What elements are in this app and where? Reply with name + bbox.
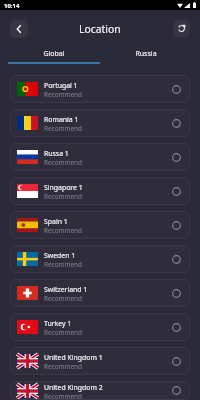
staticText: 10:14 bbox=[4, 2, 20, 10]
staticText: Portugal 1 bbox=[44, 81, 78, 90]
staticText: Recommend bbox=[44, 260, 82, 269]
staticText: Turkey 1 bbox=[44, 319, 72, 328]
staticText: Recommend bbox=[44, 192, 82, 201]
button[interactable]: Spain 1 bbox=[10, 211, 190, 239]
staticText: Recommend bbox=[44, 124, 82, 133]
staticText: United Kingdom 1 bbox=[44, 353, 103, 362]
staticText: Sweden 1 bbox=[44, 251, 76, 260]
staticText: Recommend bbox=[44, 328, 82, 337]
button[interactable]: Portugal 1 bbox=[10, 75, 190, 103]
button[interactable]: Back bbox=[10, 20, 28, 38]
staticText: Singapore 1 bbox=[44, 183, 83, 192]
staticText: Recommend bbox=[44, 226, 82, 235]
button[interactable]: Russia bbox=[100, 47, 192, 64]
staticText: Location bbox=[79, 22, 121, 36]
staticText: Recommend bbox=[44, 158, 82, 167]
staticText: Spain 1 bbox=[44, 217, 68, 226]
button[interactable]: Singapore 1 bbox=[10, 177, 190, 205]
button[interactable]: Switzerland 1 bbox=[10, 279, 190, 307]
button[interactable]: Sweden 1 bbox=[10, 245, 190, 273]
staticText: Global bbox=[43, 49, 65, 59]
button[interactable]: Russa 1 bbox=[10, 143, 190, 171]
staticText: Switzerland 1 bbox=[44, 285, 88, 294]
staticText: Russa 1 bbox=[44, 149, 69, 158]
staticText: Recommend bbox=[44, 294, 82, 303]
staticText: Russia bbox=[135, 49, 157, 59]
button[interactable]: United Kingdom 2 bbox=[10, 381, 190, 400]
button[interactable]: Global bbox=[8, 47, 100, 64]
button[interactable]: United Kingdom 1 bbox=[10, 347, 190, 375]
staticText: United Kingdom 2 bbox=[44, 383, 103, 392]
staticText: Recommend bbox=[44, 90, 82, 99]
staticText: Recommend bbox=[44, 362, 82, 371]
staticText: Recommend bbox=[44, 392, 82, 400]
staticText: Romania 1 bbox=[44, 115, 79, 124]
button[interactable]: Turkey 1 bbox=[10, 313, 190, 341]
button[interactable]: Romania 1 bbox=[10, 109, 190, 137]
button[interactable]: Refresh bbox=[173, 20, 190, 37]
